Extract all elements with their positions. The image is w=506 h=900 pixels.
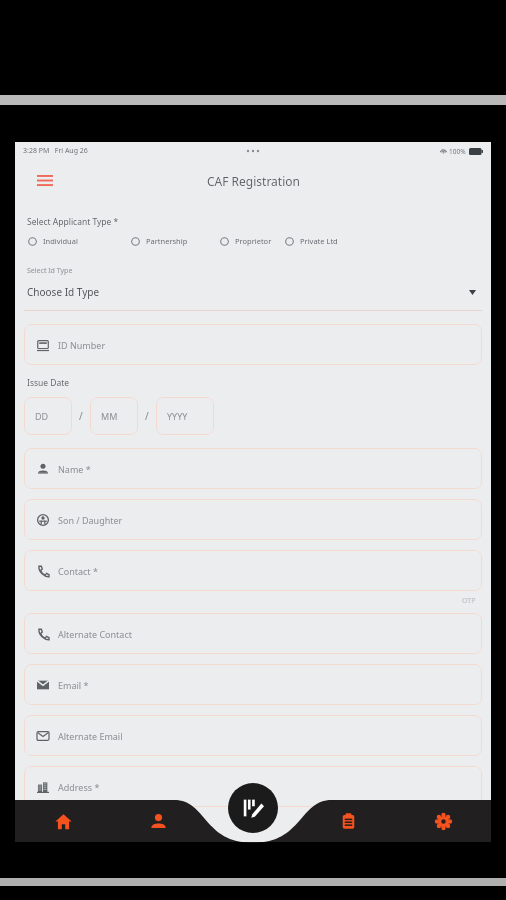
button[interactable]: Email * (24, 664, 482, 705)
staticText: Choose Id Type (27, 285, 469, 299)
staticText: 3:28 PM Fri Aug 26 (23, 146, 88, 156)
button[interactable]: Address * (24, 766, 482, 807)
button[interactable]: OTP (462, 596, 476, 606)
staticText: Individual (43, 236, 78, 246)
staticText: Select Applicant Type * (27, 216, 119, 228)
button[interactable]: New registration (228, 783, 278, 833)
button[interactable]: Menu (31, 167, 59, 195)
staticText: CAF Registration (207, 173, 300, 189)
button[interactable]: Partnership (127, 236, 216, 246)
staticText: Alternate Email (58, 730, 123, 742)
staticText: Alternate Contact (58, 628, 132, 640)
staticText: Private Ltd (300, 236, 338, 246)
staticText: / (145, 409, 149, 423)
staticText: DD (35, 410, 49, 422)
button[interactable]: Alternate Contact (24, 613, 482, 654)
staticText: ID Number (58, 339, 106, 351)
button[interactable]: DD (24, 397, 72, 435)
button[interactable]: Profile (111, 800, 206, 842)
staticText: Partnership (146, 236, 188, 246)
button[interactable]: ID Number (24, 324, 482, 365)
button[interactable]: Alternate Email (24, 715, 482, 756)
staticText: MM (101, 410, 118, 422)
button[interactable]: YYYY (156, 397, 214, 435)
button[interactable]: Settings (396, 800, 491, 842)
button[interactable]: Individual (24, 236, 127, 246)
staticText: Son / Daughter (58, 514, 123, 526)
staticText: Contact * (58, 565, 98, 577)
staticText: / (79, 409, 83, 423)
button[interactable]: MM (90, 397, 138, 435)
staticText: Issue Date (27, 377, 70, 389)
staticText: Proprietor (235, 236, 272, 246)
button[interactable]: Son / Daughter (24, 499, 482, 540)
staticText: YYYY (167, 410, 188, 422)
button[interactable]: Proprietor (216, 236, 281, 246)
staticText: Name * (58, 463, 91, 475)
button[interactable]: Select Id Type (24, 266, 482, 311)
staticText: Address * (58, 781, 100, 793)
staticText: 100% (449, 147, 466, 156)
staticText: Select Id Type (27, 266, 73, 276)
button[interactable]: Name * (24, 448, 482, 489)
button[interactable]: Home (15, 800, 111, 842)
button[interactable]: Forms (301, 800, 396, 842)
staticText: Email * (58, 679, 89, 691)
button[interactable]: Private Ltd (281, 236, 482, 246)
button[interactable]: Contact * (24, 550, 482, 591)
